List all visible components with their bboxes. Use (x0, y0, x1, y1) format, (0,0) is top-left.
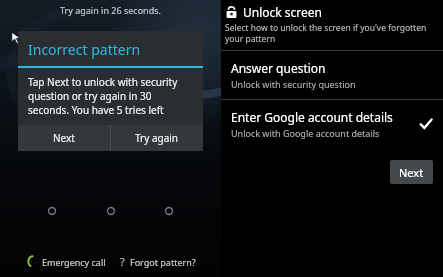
staticText: Unlock with security question (231, 78, 356, 90)
staticText: Tap Next to unlock with security questio… (28, 75, 191, 117)
staticText: Next (53, 131, 75, 145)
staticText: Enter Google account details (231, 109, 393, 125)
staticText: Unlock screen (243, 4, 323, 20)
button[interactable]: Next (18, 125, 110, 151)
staticText: Try again (135, 131, 179, 145)
staticText: Answer question (231, 60, 326, 76)
button[interactable]: Try again (111, 125, 203, 151)
staticText: Emergency call (42, 256, 106, 268)
button[interactable]: Answer question (221, 51, 443, 99)
staticText: Unlock with Google account details (231, 127, 380, 139)
button[interactable]: Next (390, 160, 433, 184)
button[interactable]: Emergency call (24, 253, 108, 270)
staticText: Forgot pattern? (130, 256, 196, 268)
button[interactable]: Enter Google account details (221, 100, 443, 148)
other: Selected (419, 117, 433, 131)
staticText: Next (399, 165, 424, 180)
staticText: Try again in 26 seconds. (60, 4, 161, 16)
button[interactable]: ? (118, 252, 198, 271)
other: Lock (225, 6, 238, 19)
staticText: ? (120, 254, 125, 269)
staticText: Incorrect pattern (28, 40, 141, 59)
staticText: Select how to unlock the screen if you'v… (225, 22, 435, 44)
